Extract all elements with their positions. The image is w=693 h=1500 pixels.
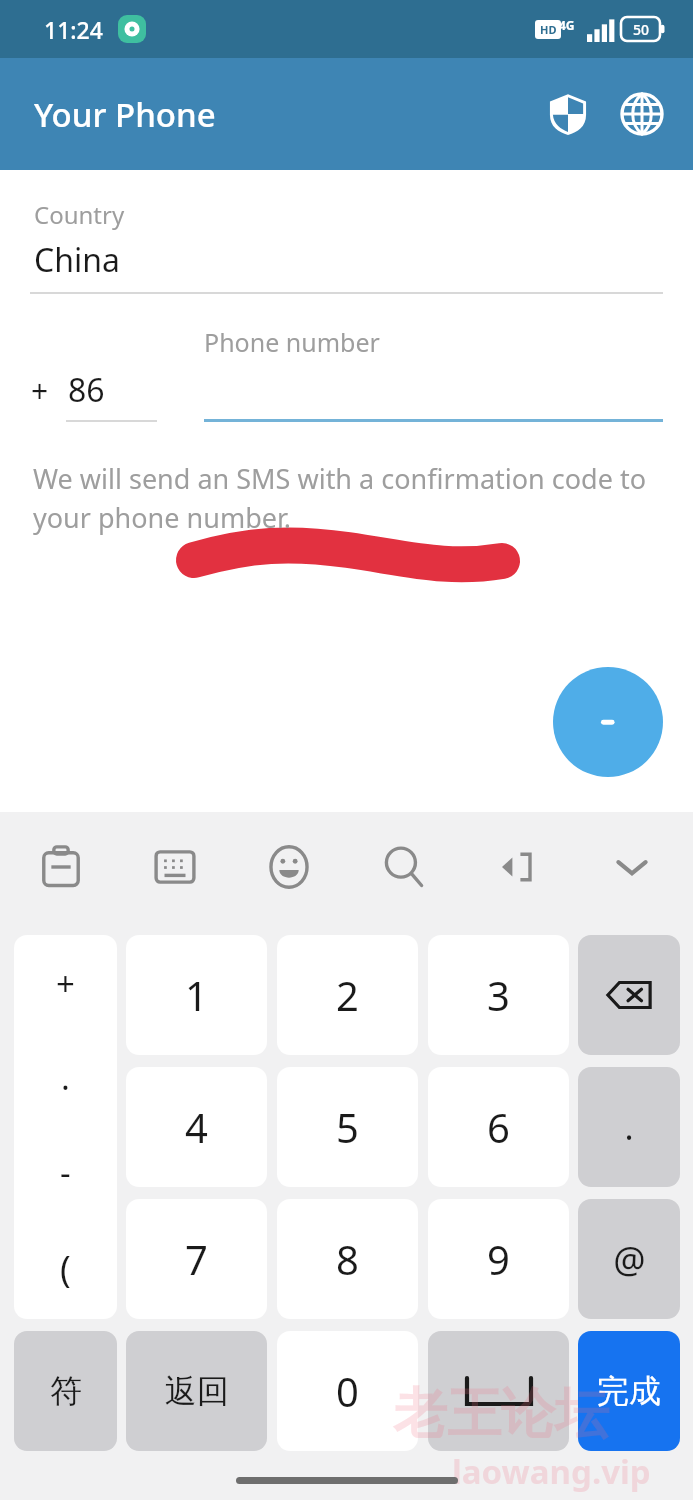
button[interactable]: . [578, 1067, 680, 1187]
button[interactable]: Emoji [256, 834, 322, 900]
staticText: 86 [68, 368, 105, 412]
staticText: - [60, 1150, 71, 1195]
staticText: @ [613, 1235, 646, 1284]
staticText: Phone number [204, 325, 380, 359]
button[interactable]: 7 [126, 1199, 267, 1319]
button[interactable]: 8 [277, 1199, 418, 1319]
staticText: 0 [336, 1364, 359, 1418]
button[interactable]: @ [578, 1199, 680, 1319]
button[interactable]: Search [371, 834, 437, 900]
staticText: China [34, 238, 120, 282]
staticText: 2 [336, 968, 359, 1022]
staticText: Your Phone [34, 92, 216, 137]
staticText: 4G [559, 17, 575, 33]
button[interactable] [428, 1331, 569, 1451]
staticText: 1 [185, 968, 208, 1022]
button[interactable]: Clipboard [28, 834, 94, 900]
staticText: + [31, 370, 49, 411]
staticText: 返回 [165, 1371, 229, 1411]
button[interactable]: 5 [277, 1067, 418, 1187]
staticText: . [624, 1104, 634, 1150]
staticText: laowang.vip [452, 1449, 651, 1494]
staticText: 完成 [597, 1371, 661, 1411]
staticText: 11:24 [44, 14, 103, 45]
button[interactable]: 6 [428, 1067, 569, 1187]
staticText: ( [60, 1244, 71, 1293]
staticText: 4 [185, 1100, 208, 1154]
staticText: 6 [487, 1100, 510, 1154]
staticText: 3 [487, 968, 510, 1022]
staticText: 符 [50, 1371, 82, 1411]
staticText: + [56, 961, 75, 1006]
button[interactable]: 1 [126, 935, 267, 1055]
button[interactable]: Language [611, 83, 673, 145]
staticText: 7 [185, 1232, 208, 1286]
staticText: We will send an SMS with a confirmation … [33, 460, 673, 536]
staticText: Country [34, 198, 125, 231]
button[interactable]: Keyboard layout [142, 834, 208, 900]
button[interactable]: 2 [277, 935, 418, 1055]
staticText: . [61, 1055, 70, 1100]
button[interactable]: 9 [428, 1199, 569, 1319]
staticText: 50 [633, 20, 650, 39]
staticText: 8 [336, 1232, 359, 1286]
button[interactable]: Next [553, 667, 663, 777]
button[interactable]: 符 [14, 1331, 117, 1451]
staticText: 5 [336, 1100, 359, 1154]
button[interactable]: 完成 [578, 1331, 680, 1451]
staticText: 老王论坛 [393, 1380, 609, 1448]
staticText: HD [540, 22, 557, 37]
button[interactable] [578, 935, 680, 1055]
button[interactable]: 返回 [126, 1331, 267, 1451]
button[interactable]: Move cursor [485, 834, 551, 900]
button[interactable]: 4 [126, 1067, 267, 1187]
button[interactable]: Hide keyboard [599, 834, 665, 900]
button[interactable]: + [14, 935, 117, 1319]
staticText: 9 [487, 1232, 510, 1286]
button[interactable]: Security [537, 83, 599, 145]
button[interactable]: 0 [277, 1331, 418, 1451]
button[interactable]: 3 [428, 935, 569, 1055]
